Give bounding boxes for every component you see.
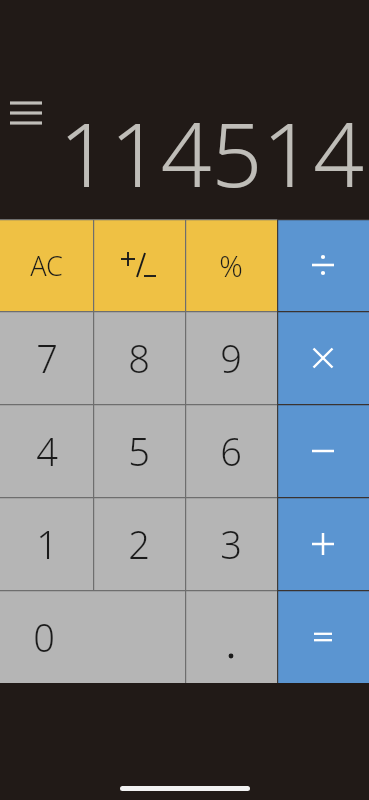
button[interactable]: Menu — [4, 92, 48, 134]
button[interactable]: 1 — [0, 497, 93, 590]
staticText: 2 — [128, 518, 150, 570]
button[interactable]: 5 — [93, 404, 185, 497]
staticText: 3 — [220, 518, 242, 570]
button[interactable]: 9 — [185, 311, 277, 404]
staticText: % — [219, 246, 243, 285]
staticText: 7 — [36, 332, 58, 384]
button[interactable]: 8 — [93, 311, 185, 404]
button[interactable]: % — [185, 219, 277, 311]
staticText: 4 — [36, 425, 58, 477]
staticText: 0 — [33, 611, 55, 663]
button[interactable]: 3 — [185, 497, 277, 590]
button[interactable]: 4 — [0, 404, 93, 497]
button[interactable]: 2 — [93, 497, 185, 590]
button[interactable]: 7 — [0, 311, 93, 404]
staticText: 6 — [220, 425, 242, 477]
staticText: 5 — [128, 425, 150, 477]
button[interactable] — [277, 404, 369, 497]
staticText: 8 — [128, 332, 150, 384]
button[interactable]: 0 — [0, 590, 185, 683]
button[interactable]: 6 — [185, 404, 277, 497]
staticText: 114514 — [59, 92, 364, 213]
button[interactable]: AC — [0, 219, 93, 311]
staticText: 1 — [36, 518, 58, 570]
staticText: 9 — [220, 332, 242, 384]
button[interactable] — [277, 219, 369, 311]
button[interactable] — [185, 590, 277, 683]
button[interactable] — [93, 219, 185, 311]
button[interactable] — [277, 311, 369, 404]
button[interactable] — [277, 590, 369, 683]
staticText: AC — [30, 247, 63, 284]
button[interactable] — [277, 497, 369, 590]
